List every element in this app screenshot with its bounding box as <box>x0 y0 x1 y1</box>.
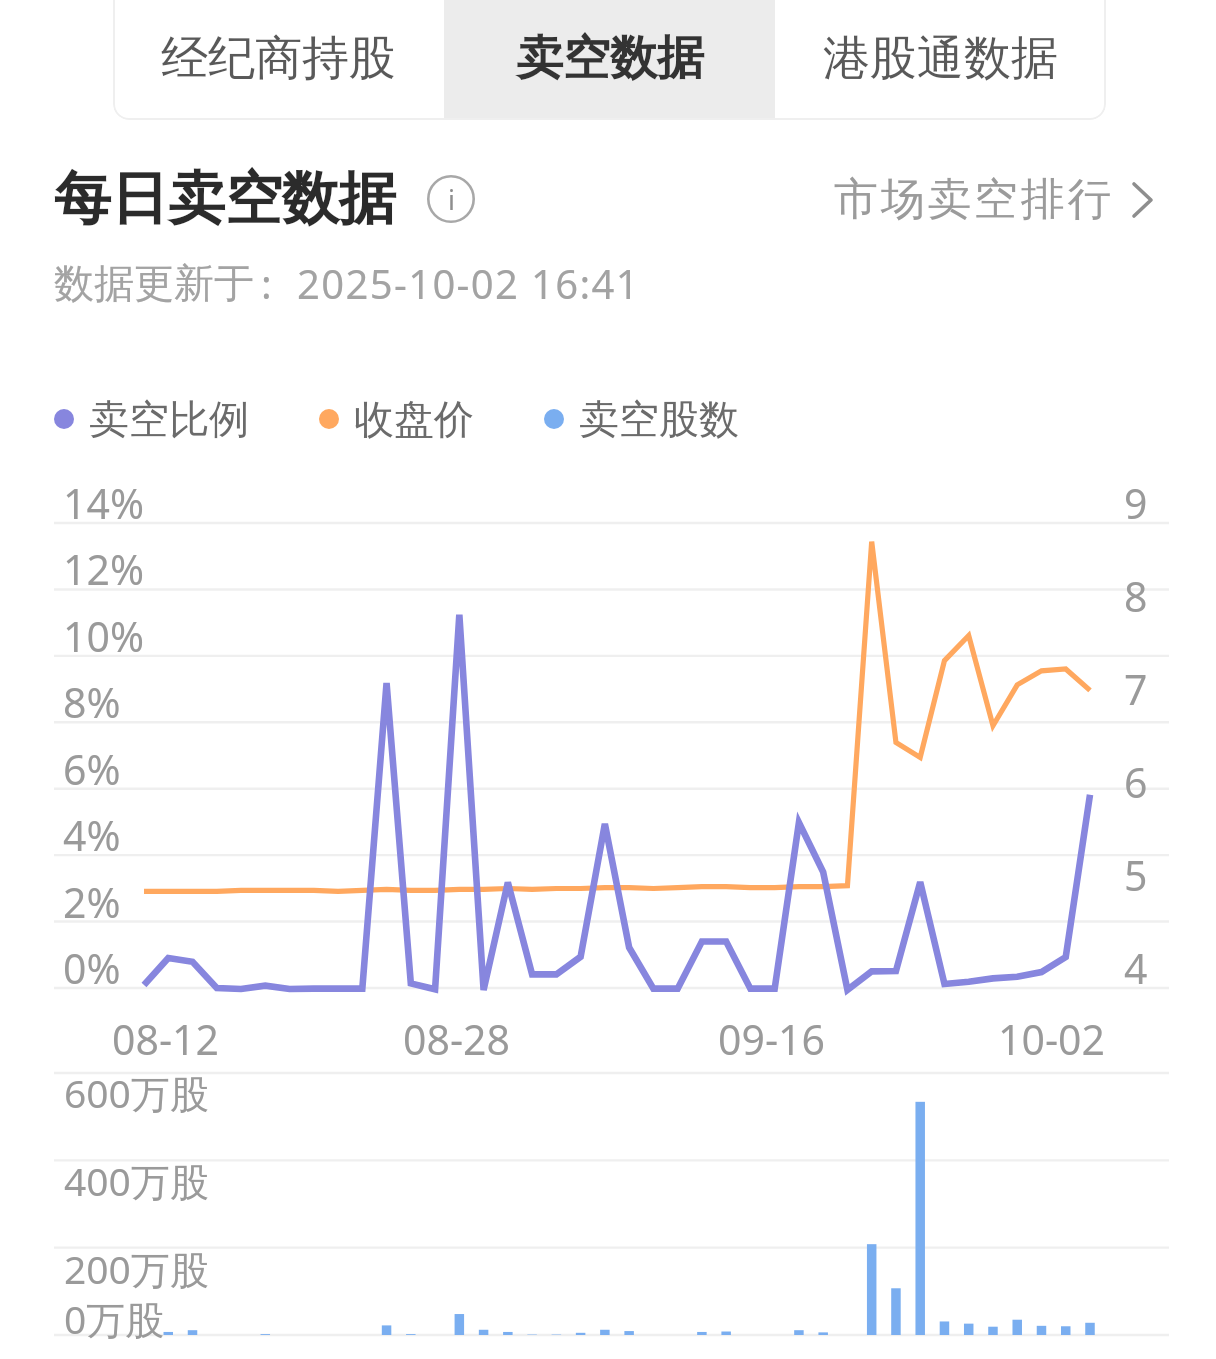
button[interactable]: 港股通数据 <box>775 0 1106 120</box>
button[interactable]: 经纪商持股 <box>113 0 444 120</box>
staticText: 6% <box>63 741 121 797</box>
staticText: 卖空股数 <box>579 394 739 444</box>
staticText: 12% <box>63 541 144 597</box>
staticText: 09-16 <box>718 1011 826 1067</box>
staticText: 4 <box>1124 940 1148 996</box>
staticText: 卖空比例 <box>89 394 249 444</box>
button[interactable]: 说明 <box>427 175 475 223</box>
button[interactable]: 卖空比例 <box>54 394 249 444</box>
staticText: 600万股 <box>64 1066 209 1119</box>
staticText: 8 <box>1124 568 1148 624</box>
staticText: 08-12 <box>112 1011 220 1067</box>
staticText: 8% <box>63 674 121 730</box>
staticText: : <box>261 256 272 310</box>
staticText: 9 <box>1124 475 1148 531</box>
staticText: 08-28 <box>403 1011 511 1067</box>
staticText: 港股通数据 <box>823 29 1058 88</box>
button[interactable]: 卖空数据 <box>444 0 775 120</box>
staticText: 卖空数据 <box>516 29 704 88</box>
staticText: 每日卖空数据 <box>54 163 396 235</box>
staticText: 14% <box>63 475 144 531</box>
staticText: 5 <box>1124 847 1148 903</box>
staticText: 10% <box>63 608 144 664</box>
staticText: 收盘价 <box>354 394 474 444</box>
staticText: 6 <box>1124 754 1148 810</box>
staticText: 2% <box>63 874 121 930</box>
staticText: 0万股 <box>64 1292 165 1345</box>
button[interactable]: 市场卖空排行 <box>834 172 1153 227</box>
staticText: 经纪商持股 <box>161 29 396 88</box>
staticText: 市场卖空排行 <box>834 172 1115 227</box>
staticText: 400万股 <box>64 1154 209 1207</box>
staticText: 2025-10-02 16:41 <box>297 256 641 310</box>
staticText: 200万股 <box>64 1242 209 1295</box>
button[interactable]: 卖空股数 <box>544 394 739 444</box>
staticText: 4% <box>63 807 121 863</box>
staticText: 10-02 <box>998 1011 1106 1067</box>
staticText: 0% <box>63 940 121 996</box>
staticText: 7 <box>1124 661 1148 717</box>
staticText: i <box>448 181 455 218</box>
button[interactable]: 收盘价 <box>319 394 474 444</box>
staticText: 数据更新于 <box>54 258 254 308</box>
